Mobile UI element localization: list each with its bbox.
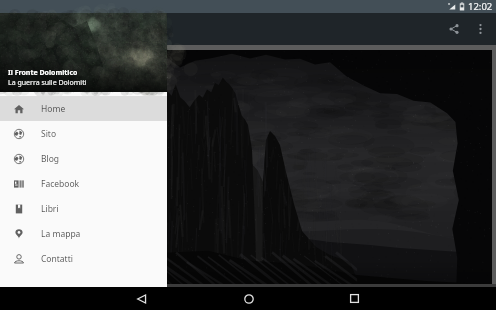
button[interactable]: Contatti bbox=[0, 246, 167, 271]
button[interactable]: Back bbox=[130, 287, 153, 310]
button[interactable]: Home bbox=[237, 287, 260, 310]
button[interactable]: Facebook bbox=[0, 171, 167, 196]
staticText: Home bbox=[41, 103, 66, 115]
button[interactable]: La mappa bbox=[0, 221, 167, 246]
button[interactable]: Home bbox=[0, 96, 167, 121]
staticText: 12:02 bbox=[468, 0, 493, 13]
button[interactable]: Libri bbox=[0, 196, 167, 221]
staticText: Libri bbox=[41, 203, 59, 215]
button[interactable]: Share bbox=[438, 13, 470, 45]
staticText: Sito bbox=[41, 128, 57, 140]
staticText: La guerra sulle Dolomiti bbox=[8, 78, 87, 88]
staticText: Il Fronte Dolomitico bbox=[8, 68, 78, 78]
staticText: La mappa bbox=[41, 228, 81, 240]
button[interactable]: Recent apps bbox=[343, 287, 366, 310]
staticText: Blog bbox=[41, 153, 60, 165]
button[interactable]: More options bbox=[470, 13, 491, 45]
staticText: Contatti bbox=[41, 253, 73, 265]
button[interactable]: Sito bbox=[0, 121, 167, 146]
staticText: Facebook bbox=[41, 178, 80, 190]
button[interactable]: Blog bbox=[0, 146, 167, 171]
